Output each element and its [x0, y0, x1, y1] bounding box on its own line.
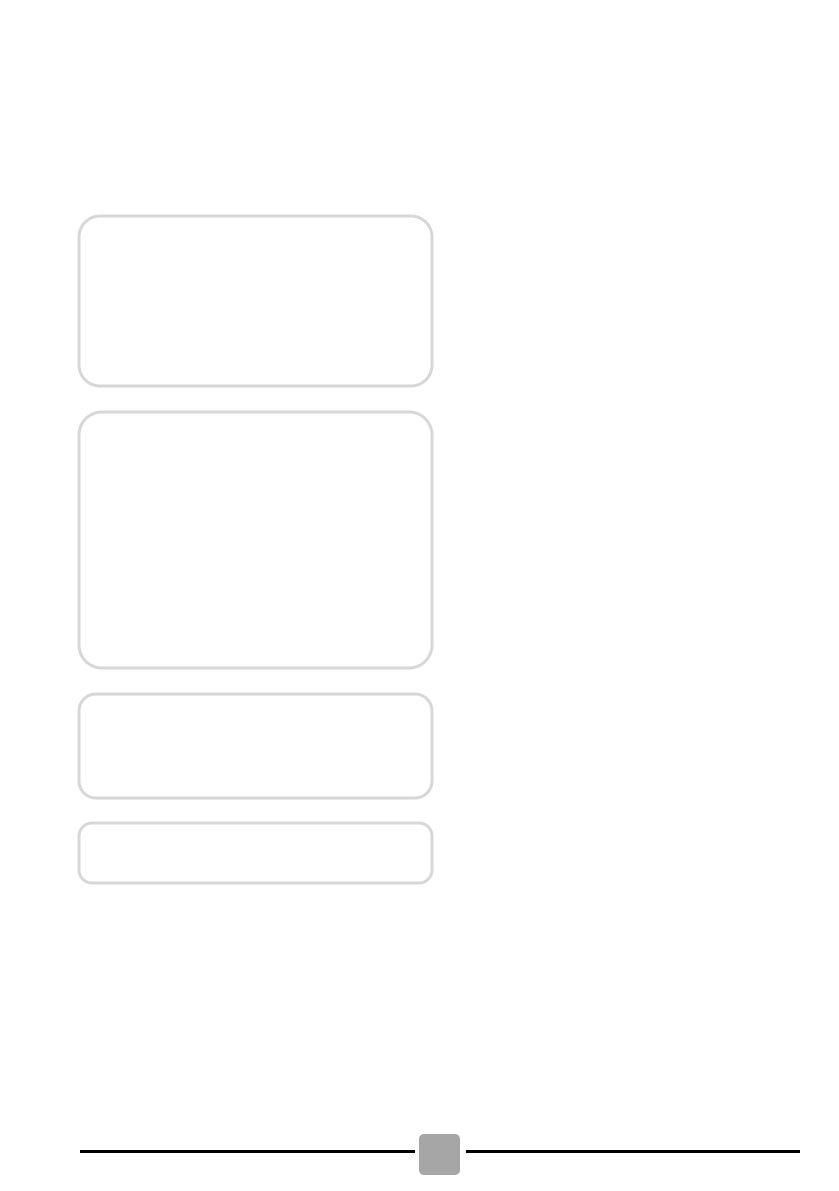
button[interactable]: Handle: [419, 1134, 460, 1175]
button[interactable]: Placeholder card: [79, 216, 432, 386]
button[interactable]: Placeholder card: [79, 694, 432, 798]
button[interactable]: Placeholder card: [79, 412, 432, 668]
button[interactable]: Placeholder card: [79, 823, 432, 883]
